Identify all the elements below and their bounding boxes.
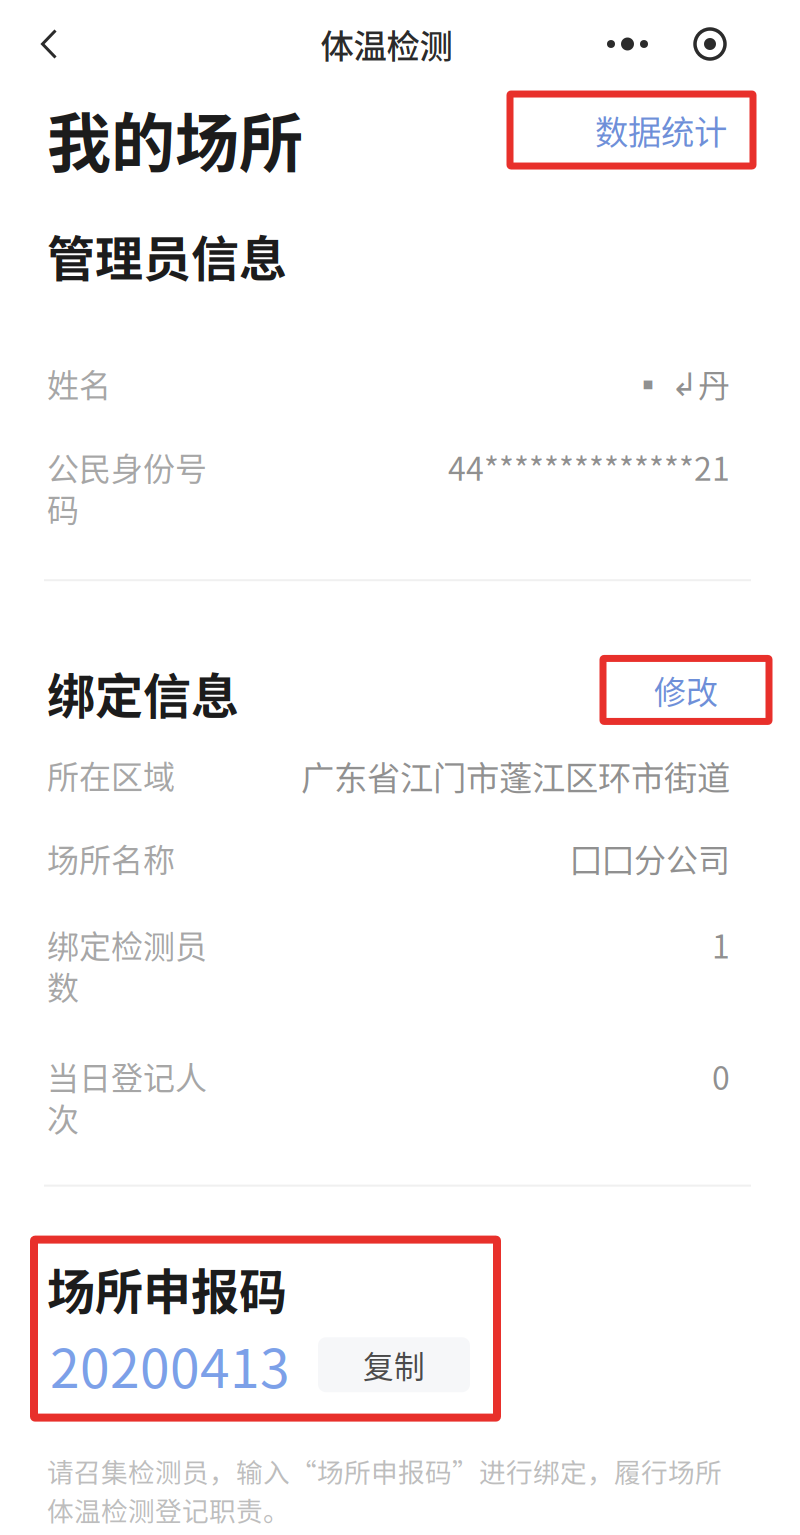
staticText: 广东省江门市蓬江区环市街道 [301,752,730,800]
staticText: 数据统计 [595,106,727,154]
staticText: 体温检测 [320,20,452,68]
staticText: 修改 [654,667,718,713]
staticText: 数 [47,963,79,1009]
staticText: 44**************21 [448,443,730,490]
staticText: 场所申报码 [47,1254,287,1323]
staticText: 我的场所 [47,92,303,185]
staticText: 公民身份号 [47,443,207,490]
staticText: 1 [712,921,730,968]
button[interactable]: 修改 [603,661,769,724]
staticText: 场所名称 [47,835,175,881]
staticText: 管理员信息 [47,221,287,290]
staticText: 请召集检测员，输入“场所申报码”进行绑定，履行场所体温检测登记职责。 [47,1452,722,1529]
button[interactable]: More [583,0,672,88]
button[interactable]: Close [672,0,748,88]
staticText: ▪ ↲丹 [632,360,730,406]
staticText: 囗囗分公司 [570,835,730,881]
button[interactable]: 复制 [318,1337,470,1392]
button[interactable]: 数据统计 [510,94,753,166]
staticText: 20200413 [50,1326,290,1403]
staticText: 码 [47,485,79,531]
staticText: 次 [47,1094,79,1141]
staticText: 姓名 [47,360,111,406]
staticText: 当日登记人 [47,1053,207,1099]
staticText: 绑定信息 [47,658,239,728]
button[interactable]: Back [10,0,88,88]
staticText: 绑定检测员 [47,921,207,968]
staticText: 0 [712,1053,730,1099]
staticText: 所在区域 [47,752,175,798]
staticText: 复制 [363,1342,425,1387]
